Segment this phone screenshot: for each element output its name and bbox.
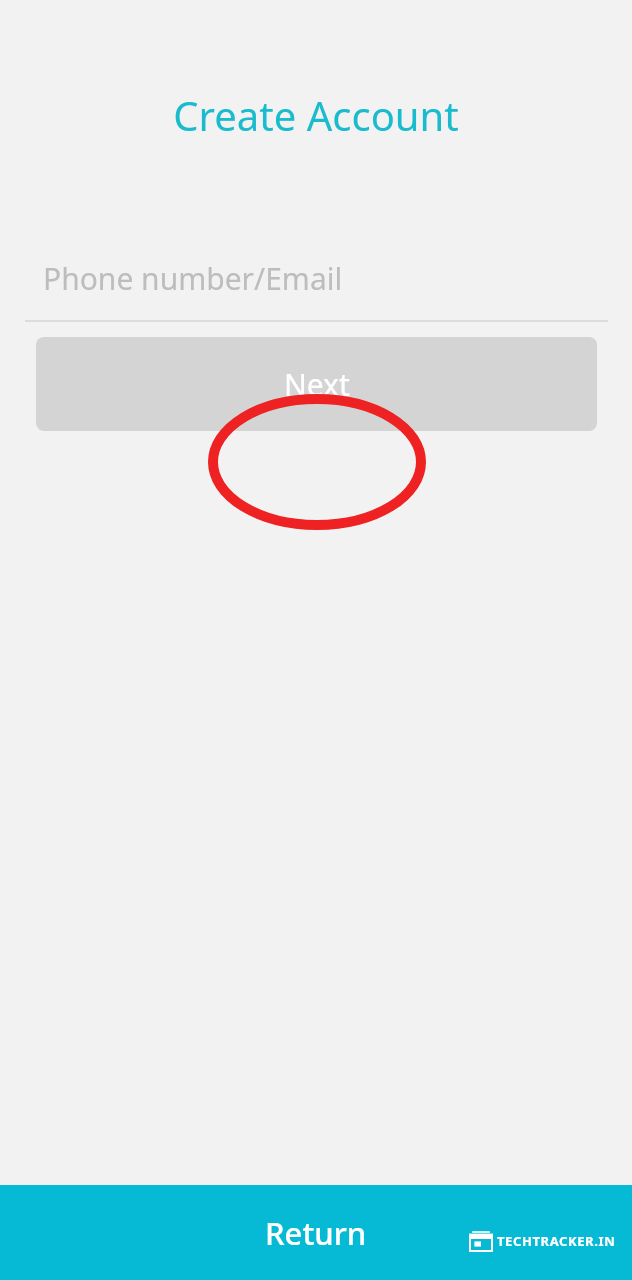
staticText: Create Account — [0, 88, 632, 142]
button[interactable]: Next — [36, 337, 597, 431]
staticText: Next — [284, 364, 350, 405]
button[interactable]: Phone number/Email — [0, 242, 632, 322]
staticText: Phone number/Email — [43, 258, 343, 299]
staticText: Return — [265, 1212, 367, 1254]
other: TechTracker watermark — [470, 1231, 492, 1251]
staticText: TECHTRACKER.IN — [497, 1232, 616, 1250]
button[interactable]: Return — [0, 1185, 632, 1280]
